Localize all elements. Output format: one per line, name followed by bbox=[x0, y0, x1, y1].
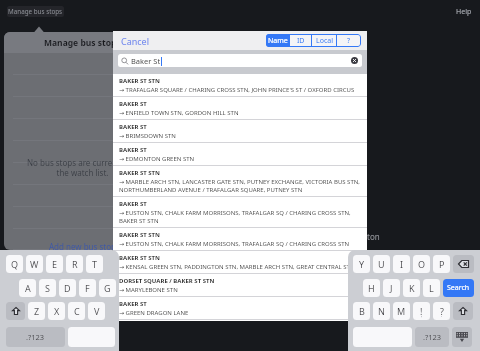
staticText: Help bbox=[456, 7, 472, 17]
button[interactable]: Shift bbox=[6, 302, 25, 320]
button[interactable]: Manage bus stops bbox=[7, 6, 64, 17]
button[interactable]: BAKER ST bbox=[113, 120, 367, 143]
button[interactable]: ! bbox=[413, 302, 430, 320]
staticText: BAKER ST STN bbox=[119, 231, 160, 239]
button[interactable]: Backspace bbox=[453, 255, 474, 273]
staticText: → KENSAL GREEN STN, PADDINGTON STN, MARB… bbox=[119, 263, 350, 271]
staticText: → GREEN DRAGON LANE bbox=[119, 309, 189, 317]
staticText: M bbox=[397, 305, 406, 317]
staticText: Y bbox=[359, 258, 365, 270]
staticText: R bbox=[72, 258, 78, 270]
button[interactable]: Search bbox=[443, 279, 474, 297]
button[interactable]: C bbox=[68, 302, 85, 320]
button[interactable]: U bbox=[373, 255, 390, 273]
staticText: ? bbox=[440, 305, 444, 317]
button[interactable]: .?123 bbox=[415, 327, 449, 347]
button[interactable]: D bbox=[59, 279, 76, 297]
staticText: K bbox=[409, 282, 415, 294]
button[interactable]: Shift bbox=[453, 302, 473, 320]
staticText: G bbox=[104, 282, 111, 294]
button[interactable]: Add new bus stop bbox=[49, 241, 116, 250]
staticText: ID bbox=[297, 36, 305, 46]
staticText: DORSET SQUARE / BAKER ST STN bbox=[119, 277, 215, 285]
button[interactable]: W bbox=[26, 255, 43, 273]
button[interactable]: BAKER ST bbox=[113, 143, 367, 166]
button[interactable]: Local bbox=[312, 34, 336, 47]
button[interactable]: Hide keyboard bbox=[452, 327, 472, 347]
staticText: S bbox=[45, 282, 50, 294]
button[interactable]: Cancel bbox=[113, 33, 156, 49]
staticText: X bbox=[54, 305, 60, 317]
staticText: → EUSTON STN, CHALK FARM MORRISONS, TRAF… bbox=[119, 209, 365, 225]
button[interactable]: Y bbox=[353, 255, 370, 273]
button[interactable]: B bbox=[353, 302, 370, 320]
button[interactable]: ID bbox=[290, 34, 311, 47]
staticText: .?123 bbox=[423, 332, 442, 342]
button[interactable]: G bbox=[99, 279, 116, 297]
staticText: → BRIMSDOWN STN bbox=[119, 132, 176, 140]
button[interactable]: I bbox=[393, 255, 410, 273]
staticText: T bbox=[92, 258, 98, 270]
button[interactable]: Baker St bbox=[118, 54, 362, 67]
button[interactable]: R bbox=[66, 255, 83, 273]
staticText: .?123 bbox=[26, 332, 45, 342]
staticText: → EUSTON STN, CHALK FARM MORRISONS, TRAF… bbox=[119, 240, 350, 248]
staticText: ton bbox=[367, 231, 380, 242]
staticText: Manage bus stops bbox=[44, 37, 121, 49]
button[interactable]: Help bbox=[452, 5, 475, 18]
staticText: BAKER ST bbox=[119, 300, 147, 308]
staticText: , bbox=[421, 312, 423, 319]
button[interactable]: H bbox=[363, 279, 380, 297]
staticText: . bbox=[441, 312, 443, 319]
button[interactable]: N bbox=[373, 302, 390, 320]
staticText: BAKER ST STN bbox=[119, 254, 160, 262]
staticText: E bbox=[52, 258, 58, 270]
button[interactable]: F bbox=[79, 279, 96, 297]
button[interactable]: T bbox=[86, 255, 103, 273]
button[interactable]: BAKER ST bbox=[113, 297, 367, 320]
staticText: C bbox=[74, 305, 80, 317]
staticText: O bbox=[418, 258, 426, 270]
staticText: U bbox=[378, 258, 385, 270]
button[interactable]: BAKER ST bbox=[113, 197, 367, 228]
staticText: BAKER ST bbox=[119, 123, 147, 131]
button[interactable]: Q bbox=[6, 255, 23, 273]
button[interactable]: A bbox=[19, 279, 36, 297]
staticText: B bbox=[359, 305, 365, 317]
button[interactable]: BAKER ST STN bbox=[113, 228, 367, 251]
staticText: BAKER ST bbox=[119, 146, 147, 154]
button[interactable]: BAKER ST STN bbox=[113, 251, 367, 274]
button[interactable]: Z bbox=[28, 302, 45, 320]
button[interactable]: E bbox=[46, 255, 63, 273]
staticText: D bbox=[64, 282, 71, 294]
staticText: A bbox=[25, 282, 31, 294]
button[interactable]: ? bbox=[433, 302, 450, 320]
button[interactable]: S bbox=[39, 279, 56, 297]
button[interactable]: K bbox=[403, 279, 420, 297]
button[interactable]: P bbox=[433, 255, 450, 273]
button[interactable]: BAKER ST STN bbox=[113, 74, 367, 97]
button[interactable]: X bbox=[48, 302, 65, 320]
button[interactable]: V bbox=[88, 302, 105, 320]
button[interactable]: Name bbox=[266, 34, 289, 47]
staticText: I bbox=[400, 258, 404, 270]
button[interactable]: J bbox=[383, 279, 400, 297]
button[interactable] bbox=[68, 327, 115, 347]
button[interactable] bbox=[353, 327, 412, 347]
button[interactable]: .?123 bbox=[6, 327, 65, 347]
staticText: V bbox=[94, 305, 100, 317]
button[interactable]: DORSET SQUARE / BAKER ST STN bbox=[113, 274, 367, 297]
button[interactable]: Clear text bbox=[351, 57, 358, 64]
staticText: BAKER ST STN bbox=[119, 169, 160, 177]
button[interactable]: ? bbox=[337, 34, 361, 47]
staticText: Q bbox=[11, 258, 19, 270]
staticText: Search bbox=[447, 283, 470, 293]
button[interactable]: M bbox=[393, 302, 410, 320]
button[interactable]: BAKER ST STN bbox=[113, 166, 367, 197]
staticText: → MARBLE ARCH STN, LANCASTER GATE STN, P… bbox=[119, 178, 365, 194]
button[interactable]: BAKER ST bbox=[113, 97, 367, 120]
button[interactable]: L bbox=[423, 279, 440, 297]
staticText: No bus stops are currently on the watch … bbox=[27, 157, 138, 178]
button[interactable]: O bbox=[413, 255, 430, 273]
staticText: → MARYLEBONE STN bbox=[119, 286, 178, 294]
